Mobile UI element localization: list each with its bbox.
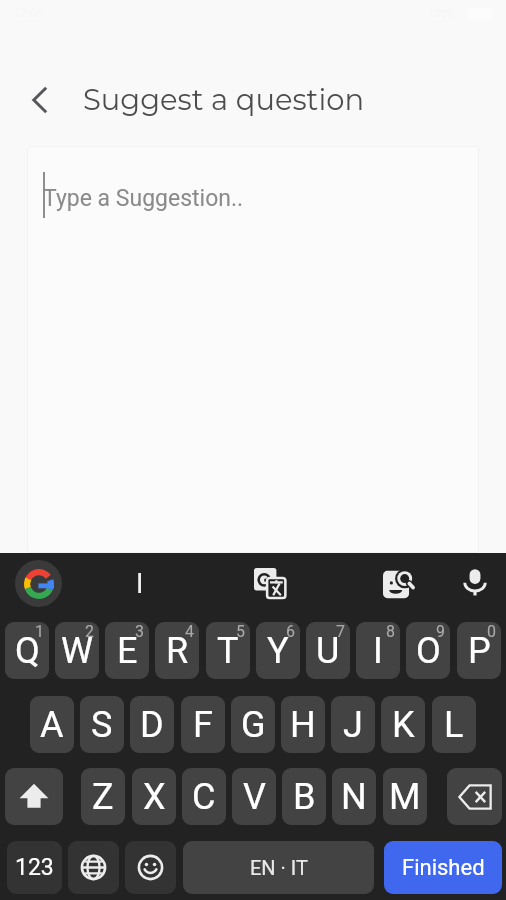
staticText: Q xyxy=(15,630,40,672)
staticText: V xyxy=(243,776,266,818)
button[interactable]: Emoji xyxy=(125,841,176,894)
button[interactable]: R xyxy=(155,622,199,679)
staticText: D xyxy=(140,704,164,746)
button[interactable]: M xyxy=(383,768,427,825)
button[interactable]: C xyxy=(182,768,226,825)
button[interactable]: P xyxy=(457,622,501,679)
staticText: U xyxy=(316,630,340,672)
button[interactable]: T xyxy=(206,622,250,679)
staticText: H xyxy=(290,704,316,746)
staticText: O xyxy=(416,630,441,672)
staticText: G xyxy=(241,704,266,746)
button[interactable]: B xyxy=(282,768,326,825)
staticText: J xyxy=(343,704,363,746)
button[interactable]: Numbers xyxy=(7,841,62,894)
staticText: L xyxy=(444,704,464,746)
button[interactable]: Translate xyxy=(251,565,289,603)
button[interactable]: V xyxy=(232,768,276,825)
button[interactable]: N xyxy=(332,768,376,825)
button[interactable]: Back xyxy=(16,76,64,124)
staticText: C xyxy=(192,776,216,818)
staticText: Y xyxy=(267,630,289,672)
staticText: P xyxy=(468,630,491,672)
staticText: W xyxy=(61,630,93,672)
button[interactable]: L xyxy=(432,696,476,753)
staticText: 123 xyxy=(15,854,54,881)
staticText: 0 xyxy=(487,622,496,641)
button[interactable]: Y xyxy=(256,622,300,679)
staticText: 6 xyxy=(286,622,295,641)
staticText: 3 xyxy=(135,622,144,641)
staticText: Type a Suggestion.. xyxy=(43,185,244,212)
staticText: 2 xyxy=(85,622,94,641)
button[interactable]: J xyxy=(331,696,375,753)
staticText: 1 xyxy=(35,622,44,641)
button[interactable]: Z xyxy=(81,768,125,825)
button[interactable]: X xyxy=(132,768,176,825)
button[interactable]: Voice input xyxy=(458,565,492,599)
staticText: F xyxy=(193,704,213,746)
staticText: I xyxy=(136,568,144,600)
staticText: Z xyxy=(92,776,114,818)
button[interactable]: H xyxy=(281,696,325,753)
staticText: 9 xyxy=(436,622,445,641)
staticText: X xyxy=(143,776,166,818)
staticText: M xyxy=(389,776,421,818)
staticText: 7 xyxy=(336,622,345,641)
button[interactable]: I xyxy=(356,622,400,679)
button[interactable]: S xyxy=(80,696,124,753)
button[interactable]: W xyxy=(55,622,99,679)
staticText: I xyxy=(373,630,383,672)
button[interactable]: Change language xyxy=(68,841,119,894)
button[interactable]: Type a Suggestion.. xyxy=(27,146,479,553)
button[interactable]: Q xyxy=(5,622,49,679)
button[interactable]: Search stickers xyxy=(379,565,417,603)
button[interactable]: EN · IT xyxy=(183,841,374,894)
button[interactable]: F xyxy=(181,696,225,753)
staticText: T xyxy=(217,630,239,672)
staticText: EN · IT xyxy=(250,856,308,879)
staticText: Finished xyxy=(402,855,485,881)
staticText: A xyxy=(40,704,64,746)
button[interactable]: E xyxy=(105,622,149,679)
staticText: Suggest a question xyxy=(83,82,364,117)
button[interactable]: O xyxy=(406,622,450,679)
staticText: R xyxy=(166,630,189,672)
staticText: N xyxy=(341,776,367,818)
button[interactable]: U xyxy=(306,622,350,679)
button[interactable]: Backspace xyxy=(447,768,502,825)
button[interactable]: Finished xyxy=(384,841,502,894)
staticText: 5 xyxy=(236,622,245,641)
staticText: E xyxy=(117,630,138,672)
staticText: 8 xyxy=(386,622,395,641)
staticText: B xyxy=(293,776,316,818)
staticText: 4 xyxy=(185,622,194,641)
button[interactable]: A xyxy=(30,696,74,753)
button[interactable]: Google search xyxy=(15,560,62,607)
button[interactable]: D xyxy=(130,696,174,753)
button[interactable]: K xyxy=(381,696,425,753)
button[interactable]: G xyxy=(231,696,275,753)
staticText: K xyxy=(392,704,415,746)
staticText: S xyxy=(91,704,113,746)
button[interactable]: Shift xyxy=(5,768,63,825)
